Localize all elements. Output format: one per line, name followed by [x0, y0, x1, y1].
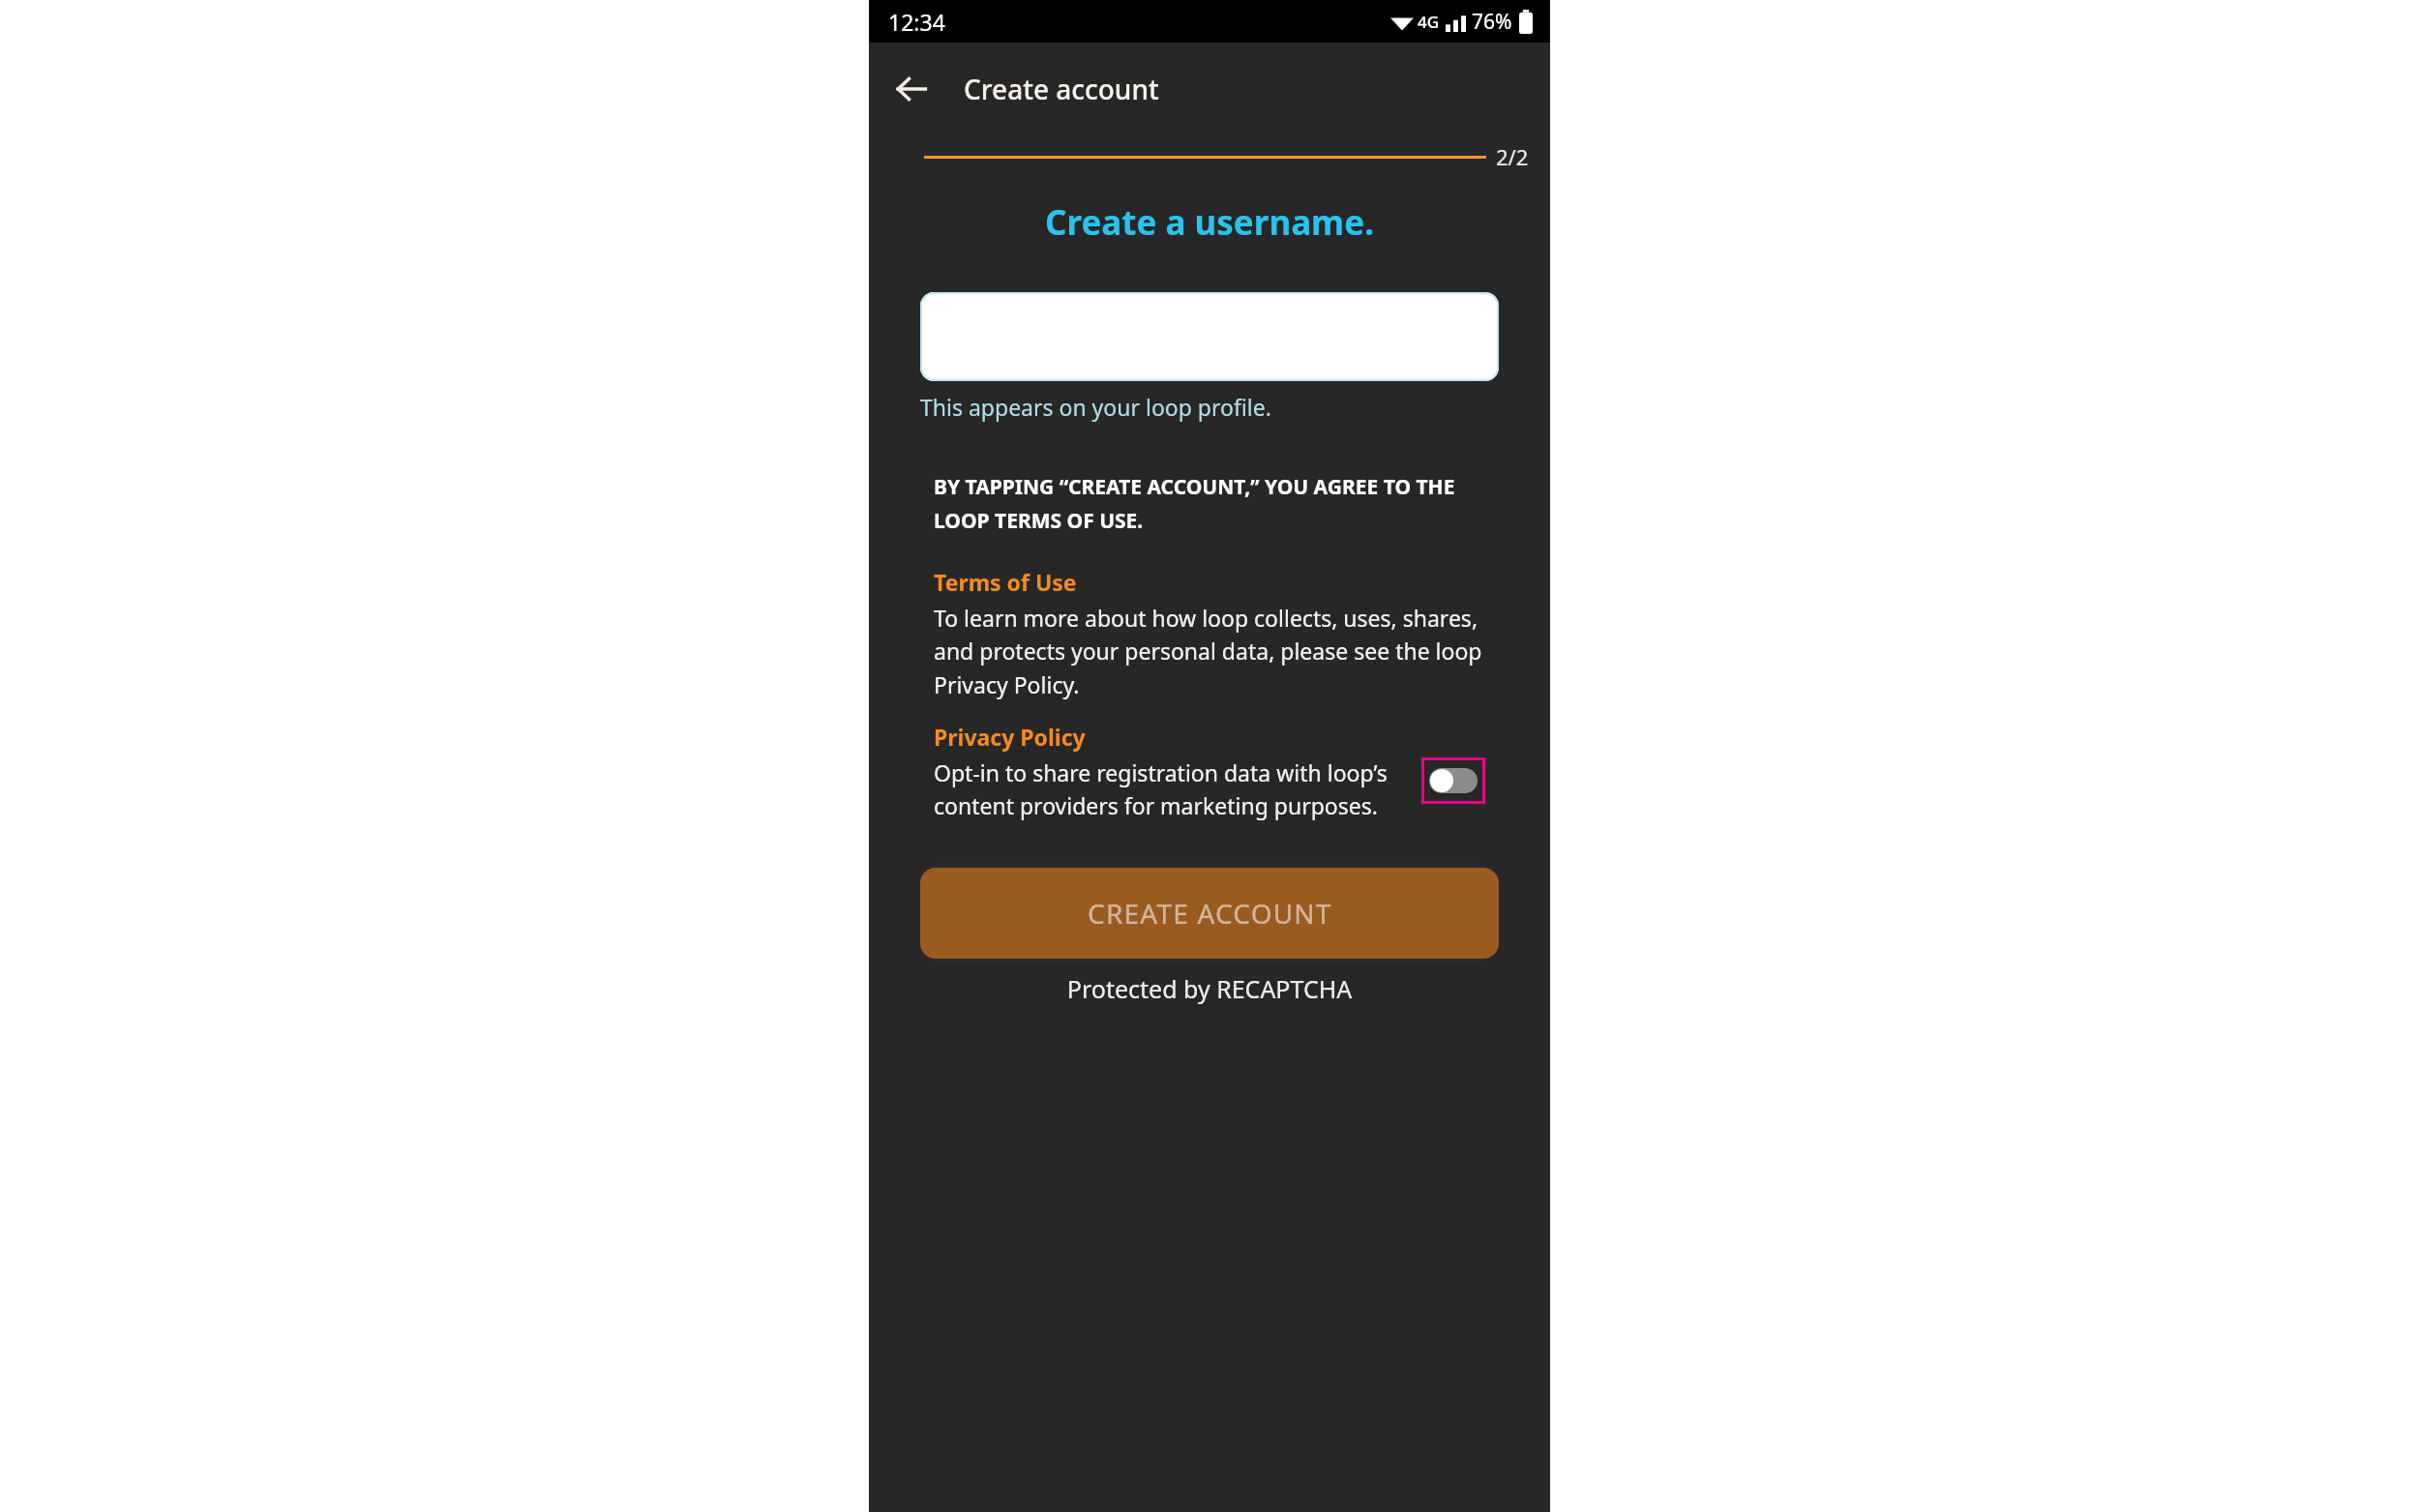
- staticText: Opt-in to share registration data with l…: [934, 757, 1416, 821]
- staticText: BY TAPPING “CREATE ACCOUNT,” YOU AGREE T…: [934, 473, 1485, 535]
- staticText: Create account: [964, 71, 1159, 107]
- staticText: CREATE ACCOUNT: [1088, 895, 1332, 932]
- button[interactable]: Terms of Use: [934, 567, 1077, 597]
- button[interactable]: Privacy Policy: [934, 722, 1086, 752]
- button[interactable]: Back: [882, 60, 941, 118]
- button[interactable]: [920, 292, 1499, 381]
- staticText: 12:34: [888, 7, 945, 37]
- button[interactable]: CREATE ACCOUNT: [920, 868, 1499, 959]
- staticText: 76%: [1472, 8, 1512, 36]
- staticText: To learn more about how loop collects, u…: [934, 603, 1485, 700]
- staticText: Create a username.: [869, 199, 1550, 246]
- staticText: 2/2: [1496, 142, 1529, 171]
- staticText: 4G: [1418, 11, 1440, 33]
- button[interactable]: Opt-in toggle: [1421, 757, 1485, 804]
- staticText: This appears on your loop profile.: [920, 392, 1271, 422]
- staticText: Protected by RECAPTCHA: [869, 972, 1550, 1005]
